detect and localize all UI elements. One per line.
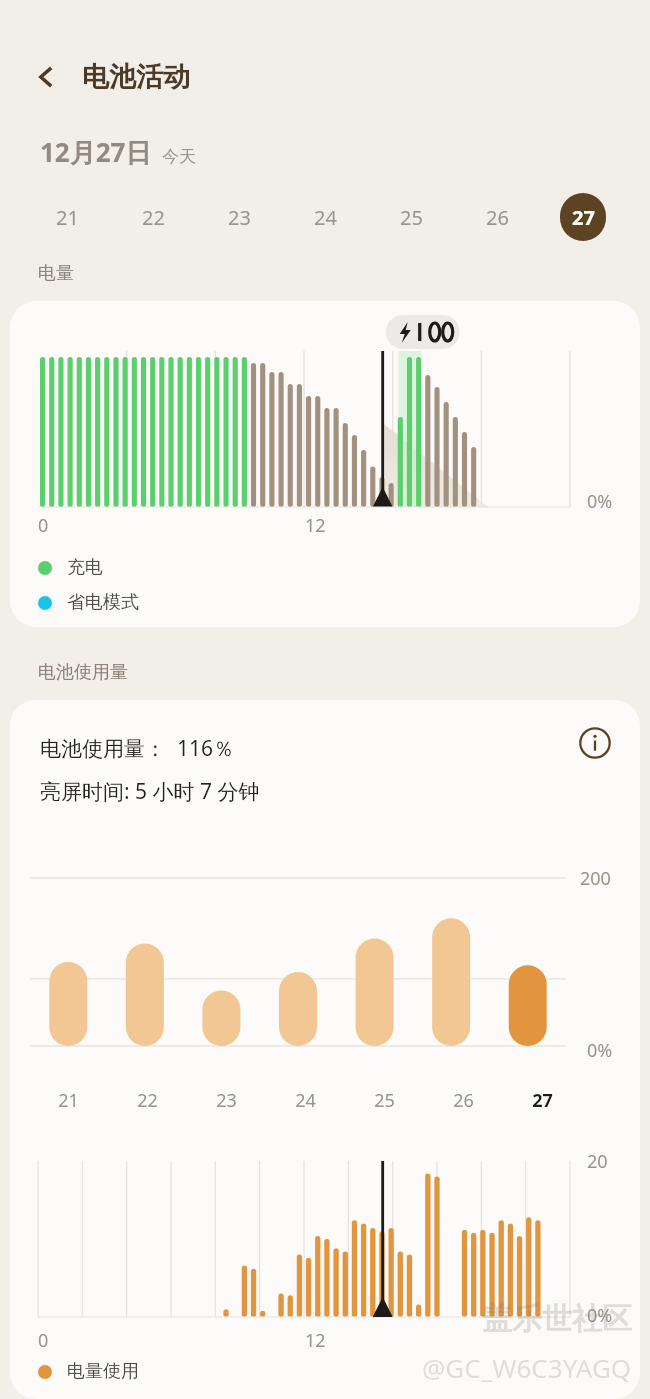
button[interactable]: 21 <box>24 190 110 244</box>
staticText: 电池使用量 <box>38 661 128 684</box>
staticText: 26 <box>486 204 509 231</box>
staticText: 21 <box>58 1088 79 1113</box>
button[interactable]: 22 <box>110 190 196 244</box>
staticText: 26 <box>453 1088 474 1113</box>
staticText: 0% <box>587 1038 613 1063</box>
staticText: 电池使用量： 116％ <box>40 734 234 763</box>
button[interactable]: 27 <box>540 190 626 244</box>
staticText: 盖乐世社区 <box>482 1300 632 1338</box>
staticText: 22 <box>142 204 165 231</box>
staticText: 电量使用 <box>67 1360 139 1383</box>
button[interactable]: 26 <box>454 190 540 244</box>
staticText: 200 <box>580 866 611 891</box>
staticText: 12 <box>305 1328 326 1353</box>
staticText: 27 <box>532 1088 553 1113</box>
staticText: 21 <box>56 204 79 231</box>
staticText: @GC_W6C3YAGQ <box>422 1350 632 1385</box>
staticText: 23 <box>228 204 251 231</box>
staticText: 0 <box>38 1328 49 1353</box>
staticText: 24 <box>295 1088 316 1113</box>
staticText: 电量 <box>38 262 74 285</box>
button[interactable]: 24 <box>282 190 368 244</box>
staticText: 20 <box>587 1149 608 1174</box>
staticText: 24 <box>314 204 337 231</box>
button[interactable]: 25 <box>368 190 454 244</box>
staticText: 今天 <box>162 146 196 167</box>
staticText: 省电模式 <box>67 591 139 614</box>
button[interactable]: Info <box>572 720 618 766</box>
staticText: 0 <box>38 513 49 538</box>
staticText: 12 <box>305 513 326 538</box>
staticText: 25 <box>400 204 423 231</box>
button[interactable]: Back <box>24 55 68 99</box>
staticText: 0% <box>587 1303 613 1328</box>
button[interactable]: 23 <box>196 190 282 244</box>
staticText: 27 <box>572 204 595 231</box>
staticText: 充电 <box>67 556 103 579</box>
staticText: 22 <box>137 1088 158 1113</box>
staticText: 亮屏时间: 5 小时 7 分钟 <box>40 777 260 806</box>
button[interactable]: 电池使用量： 116％ <box>10 700 640 1399</box>
button[interactable]: 0 <box>10 301 640 627</box>
staticText: 电池活动 <box>82 60 190 94</box>
staticText: 12月27日 <box>40 134 152 170</box>
staticText: 25 <box>374 1088 395 1113</box>
staticText: 23 <box>216 1088 237 1113</box>
staticText: 0% <box>587 489 613 514</box>
